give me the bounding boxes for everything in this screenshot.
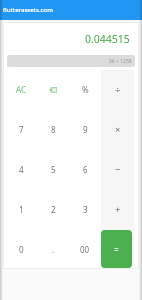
button[interactable]: 7 [6,109,37,149]
button[interactable]: × [101,109,134,149]
button[interactable]: 00 [69,229,101,269]
staticText: × [115,123,121,136]
staticText: 56 ÷ 1258 [109,58,132,65]
staticText: 0 [19,244,24,255]
staticText: 4 [19,164,24,175]
button[interactable]: 1 [6,189,37,229]
staticText: ÷ [115,83,121,96]
staticText: AC [16,84,27,95]
button[interactable]: 0 [6,229,37,269]
staticText: . [52,244,55,255]
button[interactable]: 9 [69,109,101,149]
staticText: − [115,163,121,176]
staticText: 5 [51,164,56,175]
button[interactable]: . [37,229,69,269]
staticText: 6 [83,164,88,175]
button[interactable]: + [101,189,134,229]
button[interactable]: = [101,230,132,268]
staticText: 7 [19,124,24,135]
staticText: 00 [80,244,90,255]
button[interactable]: % [69,70,101,109]
staticText: 0.044515 [85,32,130,46]
button[interactable]: ÷ [101,70,134,109]
staticText: = [114,244,119,255]
button[interactable]: AC [6,70,37,109]
button[interactable]: − [101,149,134,189]
button[interactable]: 4 [6,149,37,189]
staticText: 1 [19,204,24,215]
staticText: flutterassets.com [3,6,53,14]
button[interactable]: Delete [37,70,69,109]
staticText: 8 [51,124,56,135]
button[interactable]: 6 [69,149,101,189]
button[interactable]: 5 [37,149,69,189]
staticText: 9 [83,124,88,135]
staticText: 2 [51,204,56,215]
staticText: % [82,84,89,95]
button[interactable]: 8 [37,109,69,149]
button[interactable]: 3 [69,189,101,229]
button[interactable]: 2 [37,189,69,229]
staticText: + [115,203,121,216]
staticText: 3 [83,204,88,215]
